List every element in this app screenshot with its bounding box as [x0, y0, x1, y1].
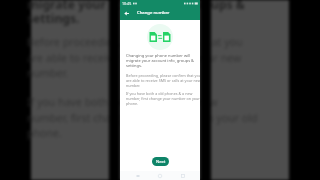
staticText: Change number	[137, 10, 170, 16]
staticText: Next	[156, 159, 166, 165]
staticText: If you have both a old phones & a new nu…	[126, 91, 200, 106]
button[interactable]: Back	[120, 6, 132, 20]
staticText: number.	[27, 66, 69, 80]
staticText: If you have both a old phones & a new	[27, 95, 218, 109]
button[interactable]: Back	[133, 171, 143, 180]
staticText: Before proceeding, please confirm that y…	[126, 73, 200, 88]
button[interactable]: Next	[152, 157, 169, 166]
button[interactable]: Home	[155, 171, 165, 180]
staticText: 10:45	[122, 1, 132, 6]
staticText: phone.	[27, 126, 62, 140]
staticText: Before proceeding, please confirm that y…	[27, 35, 243, 49]
staticText: settings.	[27, 10, 80, 26]
staticText: are able to receive SMS or calls at your…	[27, 51, 242, 65]
staticText: number, first change your number on your…	[27, 111, 258, 125]
staticText: migrate your account info, groups &	[27, 0, 245, 12]
button[interactable]: Recents	[178, 171, 188, 180]
staticText: Changing your phone number will migrate …	[126, 53, 195, 68]
